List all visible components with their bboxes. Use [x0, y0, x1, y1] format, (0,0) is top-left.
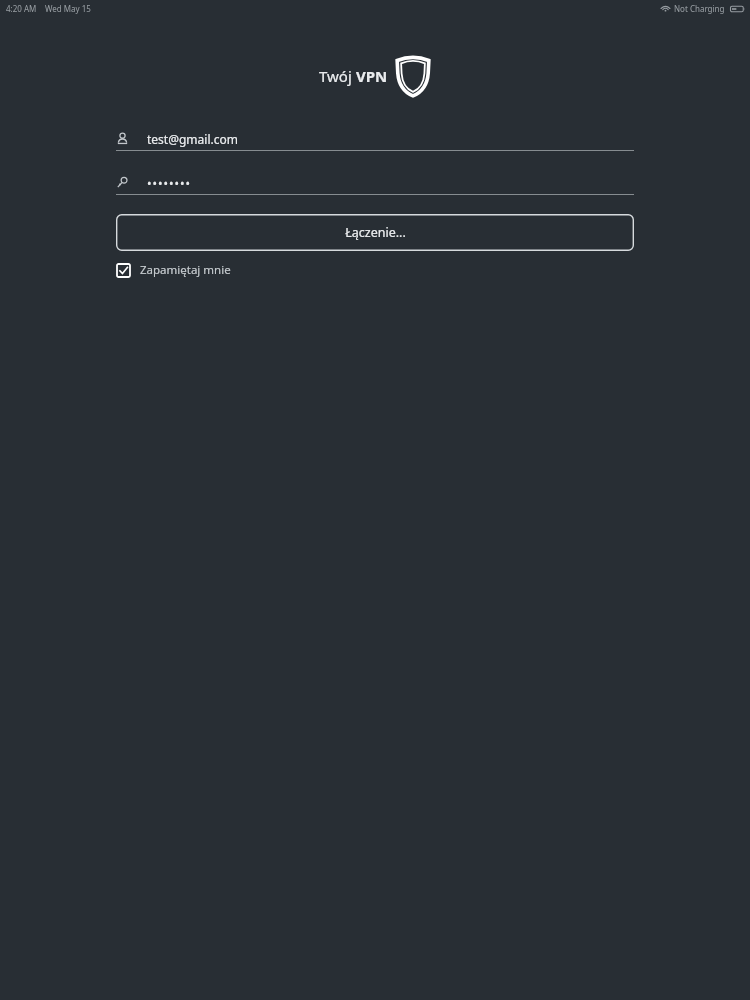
- staticText: VPN: [356, 66, 388, 86]
- button[interactable]: Zapamiętaj mnie: [116, 259, 231, 281]
- staticText: Twój: [319, 66, 356, 86]
- staticText: Wed May 15: [45, 3, 91, 14]
- staticText: ••••••••: [147, 175, 192, 191]
- staticText: Zapamiętaj mnie: [140, 262, 231, 278]
- button[interactable]: Łączenie...: [116, 214, 634, 251]
- button[interactable]: Password field: [116, 171, 634, 195]
- staticText: 4:20 AM: [6, 3, 37, 14]
- staticText: Not Charging: [674, 3, 725, 14]
- button[interactable]: Username field: [116, 127, 634, 151]
- staticText: test@gmail.com: [147, 131, 238, 147]
- staticText: Łączenie...: [345, 224, 406, 241]
